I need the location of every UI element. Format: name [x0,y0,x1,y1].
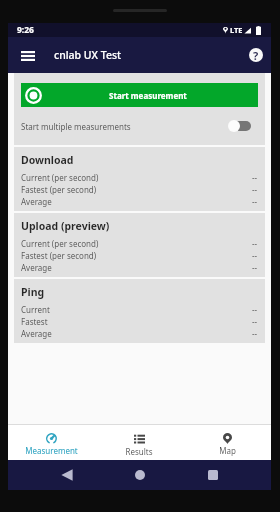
staticText: Download [21,153,74,167]
staticText: ? [253,48,259,62]
button[interactable]: Results [95,425,183,460]
button[interactable]: Map [183,425,271,460]
staticText: -- [252,262,258,273]
button[interactable]: Start multiple measurements [14,107,265,145]
staticText: Fastest [21,316,48,327]
staticText: Current (per second) [21,172,99,183]
staticText: Fastest (per second) [21,250,97,261]
staticText: Map [219,445,236,456]
staticText: Results [125,446,153,457]
staticText: Current [21,304,50,315]
staticText: -- [252,250,258,261]
staticText: -- [252,316,258,327]
button[interactable]: Help [245,44,267,66]
staticText: Average [21,328,52,339]
staticText: -- [252,172,258,183]
button[interactable]: Recent apps [176,460,249,490]
staticText: Measurement [25,445,78,456]
staticText: Average [21,262,52,273]
button[interactable]: Home [103,460,176,490]
staticText: -- [252,304,258,315]
staticText: -- [252,238,258,249]
staticText: -- [252,196,258,207]
staticText: Start multiple measurements [21,121,131,132]
button[interactable]: Open navigation menu [13,41,42,70]
staticText: Current (per second) [21,238,99,249]
button[interactable]: Measurement [8,425,95,460]
staticText: cnlab UX Test [54,48,122,62]
staticText: Fastest (per second) [21,184,97,195]
staticText: 9:26 [17,24,34,36]
staticText: Upload (preview) [21,219,110,233]
staticText: Average [21,196,52,207]
staticText: LTE [230,25,243,35]
button[interactable]: Back [30,460,103,490]
staticText: -- [252,328,258,339]
staticText: -- [252,184,258,195]
button[interactable]: Start measurement [21,83,258,107]
staticText: Start measurement [109,90,187,101]
staticText: Ping [21,285,45,299]
